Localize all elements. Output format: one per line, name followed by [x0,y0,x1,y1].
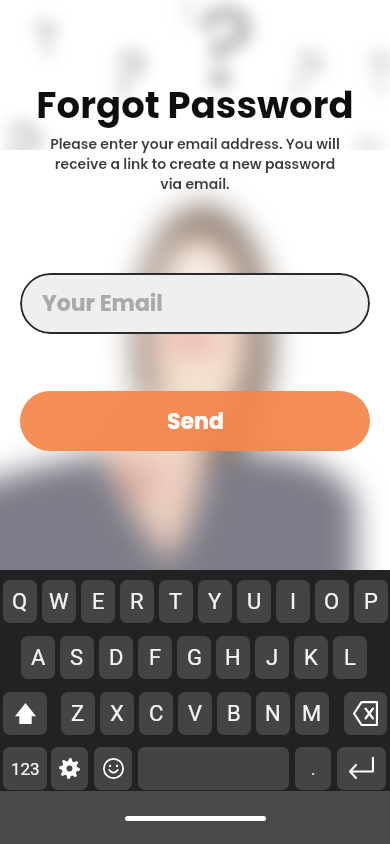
staticText: L [344,645,356,671]
button[interactable]: O [315,580,349,623]
staticText: E [92,589,105,615]
button[interactable]: 123 [3,747,47,790]
staticText: U [247,589,262,615]
button[interactable]: K [294,636,328,679]
staticText: Q [12,589,28,615]
staticText: Please enter your email address. You wil… [45,134,345,194]
staticText: D [109,645,124,671]
staticText: W [49,589,69,615]
button[interactable]: T [159,580,193,623]
button[interactable]: Settings [51,747,88,790]
staticText: Z [71,701,85,727]
button[interactable]: Emoji [94,747,132,790]
button[interactable]: Send [20,391,370,451]
staticText: J [266,645,279,671]
staticText: R [130,589,144,615]
staticText: I [290,589,296,615]
button[interactable]: M [295,692,329,735]
staticText: Forgot Password [36,79,354,131]
staticText: O [324,589,340,615]
button[interactable]: J [255,636,289,679]
staticText: T [169,589,183,615]
button[interactable]: P [354,580,388,623]
button[interactable]: H [216,636,250,679]
staticText: A [31,645,46,671]
staticText: B [227,701,241,727]
button[interactable]: X [100,692,134,735]
button[interactable]: F [138,636,172,679]
button[interactable]: Your Email [20,273,370,334]
button[interactable]: W [42,580,76,623]
button[interactable]: I [276,580,310,623]
staticText: M [302,701,322,727]
staticText: X [110,701,124,727]
staticText: C [149,701,164,727]
button[interactable]: D [99,636,133,679]
button[interactable]: Z [61,692,95,735]
button[interactable]: S [60,636,94,679]
button[interactable]: V [178,692,212,735]
button[interactable]: Shift [3,692,47,735]
button[interactable]: L [333,636,367,679]
staticText: V [188,701,203,727]
staticText: . [311,759,316,779]
button[interactable]: Backspace [344,692,387,735]
button[interactable]: Q [3,580,37,623]
staticText: Send [167,406,224,437]
staticText: H [225,645,241,671]
button[interactable]: Enter [337,747,386,790]
button[interactable]: E [81,580,115,623]
staticText: G [187,645,202,671]
button[interactable]: Y [198,580,232,623]
staticText: Your Email [42,288,163,319]
button[interactable]: . [295,747,331,790]
staticText: S [70,645,84,671]
button[interactable]: A [21,636,55,679]
staticText: 123 [11,759,40,779]
staticText: N [265,701,281,727]
staticText: Y [208,589,222,615]
button[interactable]: U [237,580,271,623]
staticText: K [304,645,318,671]
button[interactable]: G [177,636,211,679]
button[interactable]: N [256,692,290,735]
staticText: P [364,589,378,615]
button[interactable]: R [120,580,154,623]
button[interactable]: B [217,692,251,735]
staticText: F [149,645,162,671]
button[interactable]: C [139,692,173,735]
